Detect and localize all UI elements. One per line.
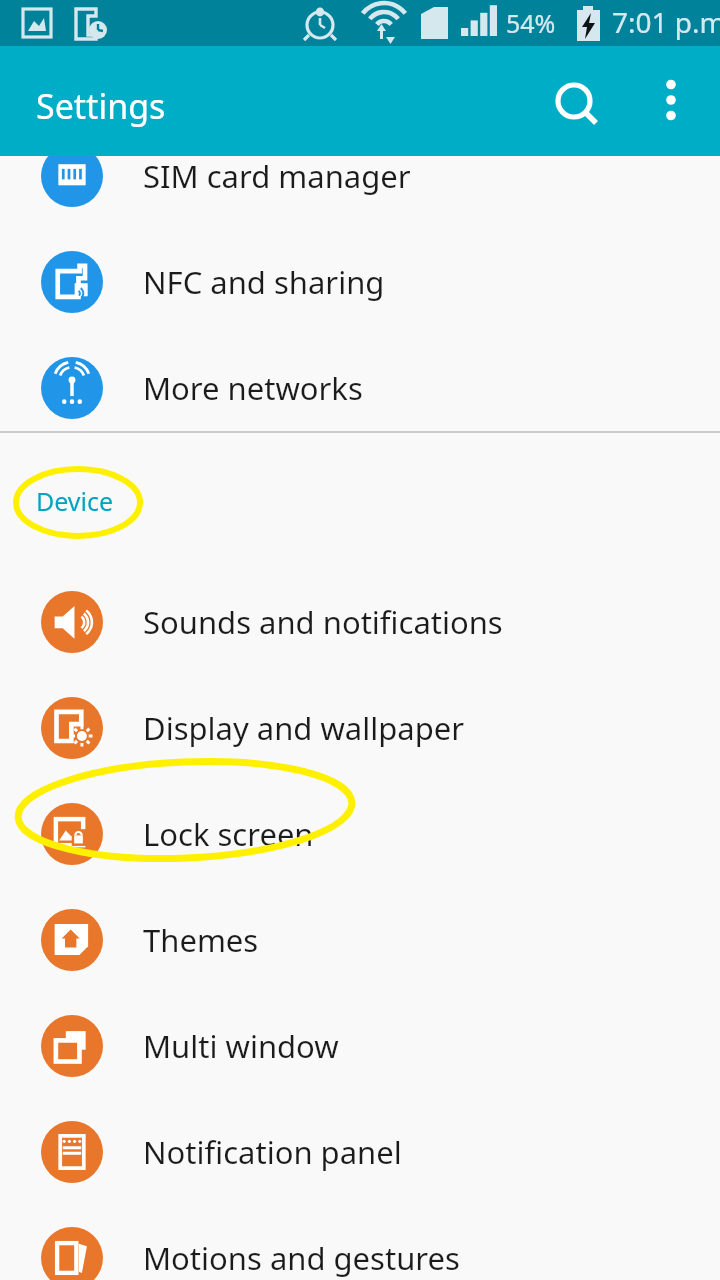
- button[interactable]: Display and wallpaper: [0, 675, 720, 781]
- button[interactable]: Themes: [0, 887, 720, 993]
- staticText: Sounds and notifications: [143, 601, 503, 643]
- staticText: More networks: [143, 367, 363, 409]
- staticText: Motions and gestures: [143, 1237, 460, 1279]
- button[interactable]: Multi window: [0, 993, 720, 1099]
- button[interactable]: Notification panel: [0, 1099, 720, 1205]
- button[interactable]: Search: [541, 69, 613, 141]
- button[interactable]: Sounds and notifications: [0, 569, 720, 675]
- staticText: Themes: [143, 919, 259, 961]
- staticText: Display and wallpaper: [143, 707, 465, 749]
- staticText: Notification panel: [143, 1131, 402, 1173]
- button[interactable]: Lock screen: [0, 781, 720, 887]
- staticText: 54%: [506, 6, 556, 40]
- staticText: Lock screen: [143, 813, 314, 855]
- staticText: Device: [36, 484, 114, 518]
- button[interactable]: Motions and gestures: [0, 1205, 720, 1280]
- staticText: Multi window: [143, 1025, 339, 1067]
- button[interactable]: NFC and sharing: [0, 229, 720, 335]
- staticText: 7:01 p.m.: [612, 3, 720, 41]
- button[interactable]: More options: [640, 69, 702, 131]
- staticText: NFC and sharing: [143, 261, 385, 303]
- button[interactable]: SIM card manager: [0, 123, 720, 229]
- staticText: Settings: [36, 83, 166, 129]
- button[interactable]: More networks: [0, 335, 720, 441]
- staticText: SIM card manager: [143, 155, 411, 197]
